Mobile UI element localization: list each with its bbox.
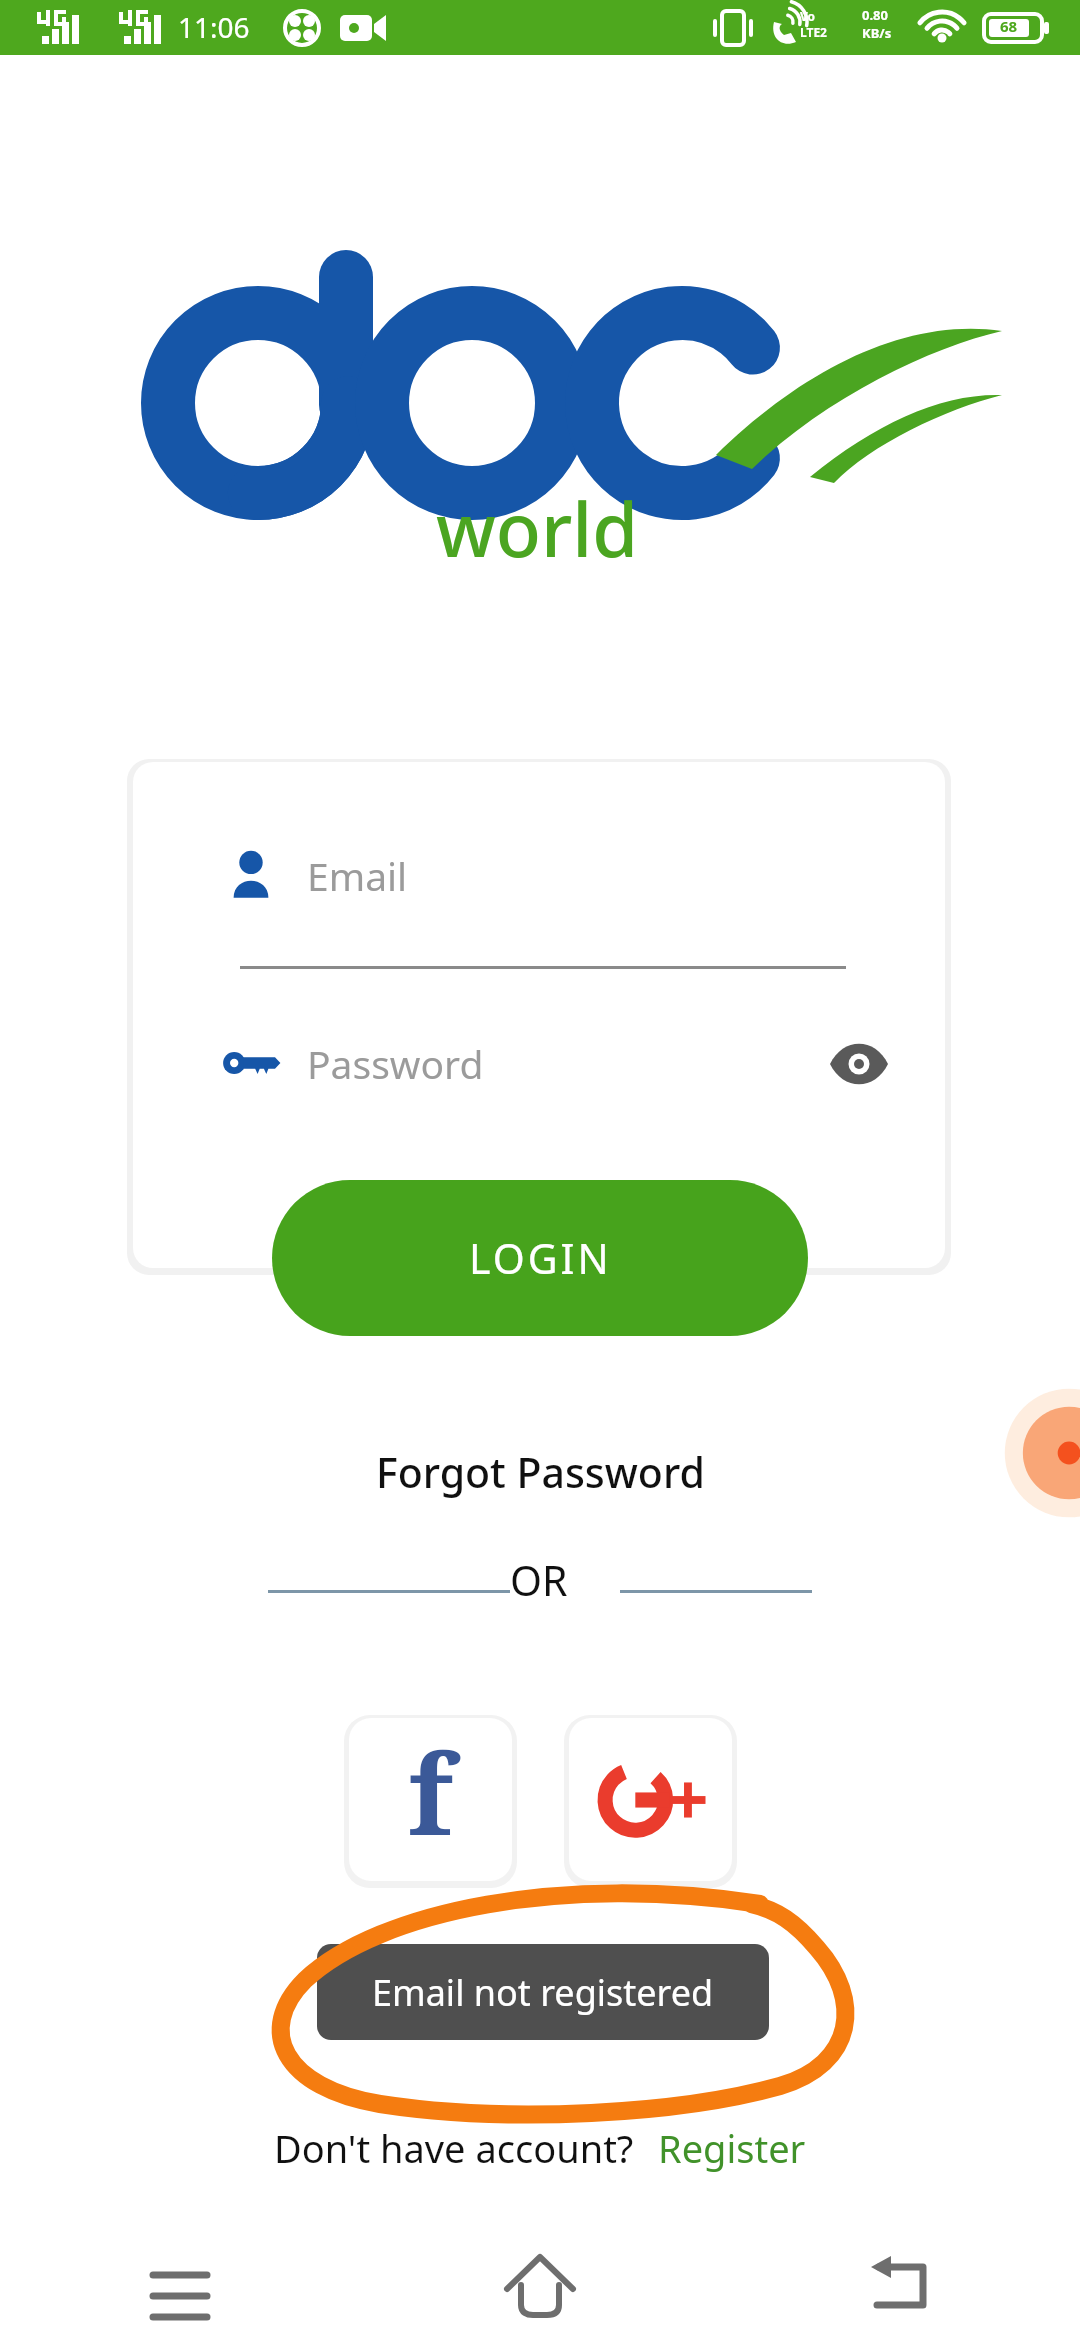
button[interactable]: Show password (818, 1023, 900, 1105)
button[interactable]: Register (658, 2122, 806, 2174)
staticText: Forgot Password (376, 1444, 705, 1500)
button[interactable]: Email (133, 820, 945, 930)
staticText: Password (307, 1037, 484, 1090)
staticText: 68 (1000, 16, 1018, 36)
staticText: world (436, 478, 639, 579)
button[interactable]: Password (133, 1008, 945, 1118)
staticText: KB/s (862, 24, 892, 42)
staticText: Email not registered (372, 1968, 714, 2017)
button[interactable]: Recent apps (0, 2232, 360, 2340)
button[interactable]: Sign in with Facebook (349, 1718, 512, 1881)
staticText: Email (307, 849, 408, 902)
staticText: LOGIN (469, 1230, 612, 1286)
button[interactable]: Forgot Password (300, 1432, 780, 1512)
staticText: LTE2 (800, 24, 827, 40)
staticText: 11:06 (178, 8, 250, 46)
staticText: 0.80 (862, 6, 888, 24)
button[interactable]: Sign in with Google (569, 1718, 732, 1881)
staticText: Don't have account? (274, 2122, 634, 2174)
button[interactable]: LOGIN (272, 1180, 808, 1336)
staticText: f (408, 1718, 453, 1867)
button[interactable]: Home (360, 2232, 720, 2340)
staticText: OR (510, 1552, 568, 1608)
button[interactable]: Back (720, 2232, 1080, 2340)
staticText: Register (658, 2122, 806, 2174)
staticText: Vo (800, 8, 816, 24)
